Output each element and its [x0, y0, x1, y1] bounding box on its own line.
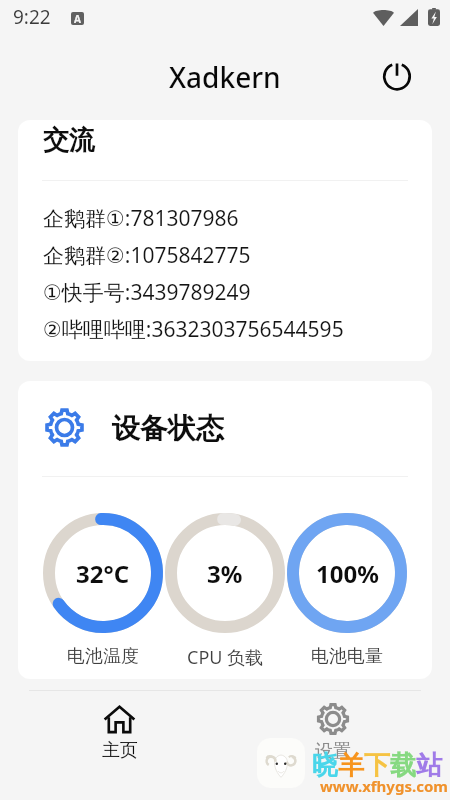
staticText: 站 [416, 749, 442, 782]
staticText: 3% [207, 557, 243, 590]
button[interactable]: 设置 [270, 690, 395, 785]
staticText: 设备状态 [112, 411, 224, 446]
staticText: Xadkern [169, 58, 281, 96]
staticText: 载 [390, 749, 416, 782]
staticText: 32°C [76, 557, 130, 590]
staticText: www.xfhygs.com [320, 776, 448, 796]
staticText: 电池电量 [311, 645, 383, 668]
staticText: 企鹅群②:1075842775 [43, 241, 251, 270]
staticText: 企鹅群①:781307986 [43, 204, 239, 233]
staticText: 晓 [312, 749, 338, 782]
button[interactable]: 主页 [57, 690, 182, 785]
staticText: ①快手号:3439789249 [43, 278, 251, 307]
staticText: 交流 [43, 124, 95, 157]
staticText: 主页 [102, 739, 138, 762]
button[interactable]: 设备状态 [18, 381, 432, 679]
staticText: 羊 [338, 749, 364, 782]
staticText: CPU 负载 [187, 645, 264, 670]
button[interactable]: 交流 [18, 120, 432, 361]
staticText: 设置 [315, 740, 351, 763]
staticText: ②哔哩哔哩:3632303756544595 [43, 315, 344, 344]
staticText: A [74, 12, 81, 25]
staticText: 9:22 [13, 4, 51, 30]
staticText: 电池温度 [67, 645, 139, 668]
staticText: 下 [364, 749, 390, 782]
button[interactable]: Power [375, 54, 419, 98]
staticText: 100% [316, 557, 379, 590]
